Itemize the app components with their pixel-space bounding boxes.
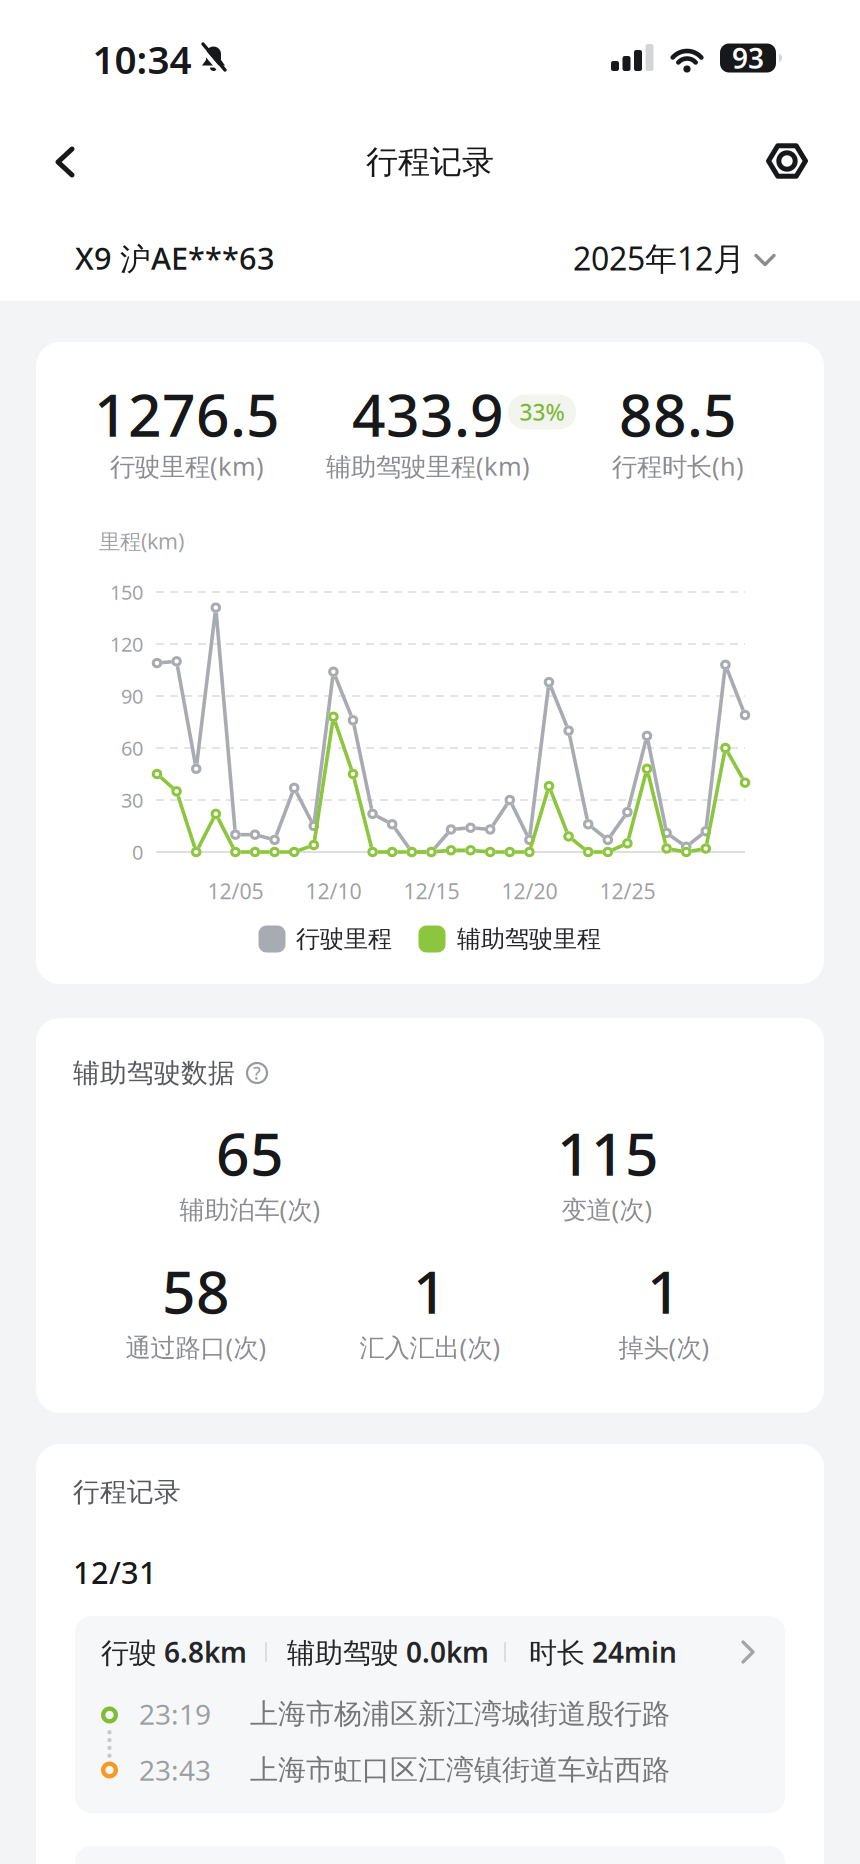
- staticText: 时长 24min: [529, 1633, 677, 1671]
- staticText: 23:19: [139, 1695, 211, 1733]
- staticText: 12/05: [207, 877, 263, 905]
- staticText: X9 沪AE***63: [75, 238, 275, 278]
- button[interactable]: Settings: [764, 139, 810, 183]
- staticText: 88.5: [619, 375, 737, 453]
- staticText: 2025年12月: [573, 237, 745, 279]
- staticText: 30: [121, 787, 143, 813]
- staticText: 辅助泊车(次): [179, 1192, 320, 1226]
- staticText: 行程时长(h): [612, 449, 744, 483]
- staticText: 150: [110, 579, 143, 605]
- staticText: 辅助驾驶 0.0km: [287, 1633, 489, 1671]
- staticText: 变道(次): [561, 1192, 652, 1226]
- staticText: 115: [557, 1114, 659, 1192]
- staticText: 12/31: [73, 1552, 157, 1592]
- staticText: 1: [647, 1252, 681, 1330]
- staticText: 行驶里程: [296, 924, 392, 954]
- staticText: 行驶里程(km): [110, 449, 264, 483]
- staticText: 里程(km): [99, 527, 184, 555]
- staticText: 通过路口(次): [125, 1330, 266, 1364]
- staticText: 12/10: [305, 877, 361, 905]
- staticText: 上海市杨浦区新江湾城街道殷行路: [250, 1697, 670, 1731]
- staticText: 掉头(次): [618, 1330, 709, 1364]
- staticText: 93: [732, 39, 764, 77]
- staticText: 58: [162, 1252, 230, 1330]
- staticText: 辅助驾驶数据: [73, 1057, 235, 1089]
- staticText: 12/25: [599, 877, 655, 905]
- staticText: 上海市虹口区江湾镇街道车站西路: [250, 1753, 670, 1787]
- staticText: 33%: [519, 397, 564, 427]
- staticText: 433.9: [352, 375, 504, 453]
- button[interactable]: Help: [245, 1061, 269, 1085]
- staticText: 行程记录: [366, 142, 494, 182]
- staticText: ?: [253, 1061, 261, 1084]
- button[interactable]: 2025年12月: [0, 0, 860, 1864]
- staticText: 90: [121, 683, 143, 709]
- button[interactable]: X9 沪AE***63: [0, 0, 860, 1864]
- staticText: 1: [413, 1252, 447, 1330]
- staticText: 汇入汇出(次): [359, 1330, 500, 1364]
- staticText: 65: [216, 1114, 284, 1192]
- button[interactable]: Back: [55, 146, 77, 178]
- staticText: 120: [110, 631, 143, 657]
- staticText: 行程记录: [73, 1476, 181, 1508]
- staticText: 10:34: [92, 33, 191, 85]
- staticText: 12/15: [403, 877, 459, 905]
- staticText: 60: [121, 735, 143, 761]
- staticText: 辅助驾驶里程: [457, 924, 601, 954]
- staticText: 辅助驾驶里程(km): [326, 449, 530, 483]
- staticText: 1276.5: [94, 375, 280, 453]
- staticText: 12/20: [501, 877, 557, 905]
- staticText: 行驶 6.8km: [101, 1633, 247, 1671]
- staticText: 0: [132, 839, 143, 865]
- staticText: 23:43: [139, 1751, 211, 1789]
- button[interactable]: 行驶 6.8km: [75, 1616, 785, 1813]
